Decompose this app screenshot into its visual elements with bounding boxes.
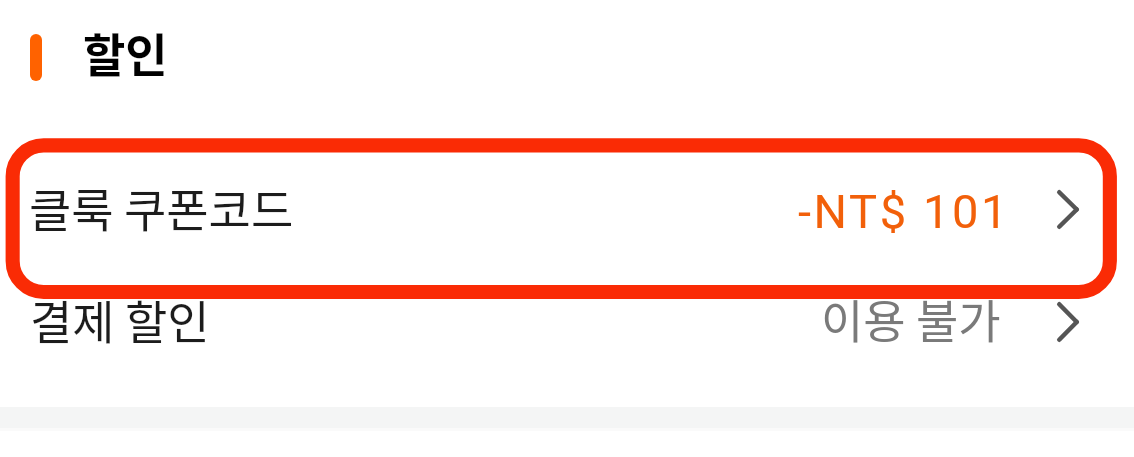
staticText: 결제 할인 xyxy=(30,286,210,353)
button[interactable]: 결제 할인 xyxy=(0,290,1134,390)
staticText: -NT$ 101 xyxy=(798,184,1011,239)
staticText: 클룩 쿠폰코드 xyxy=(29,174,294,241)
other: Open payment discount xyxy=(1057,302,1079,342)
staticText: 할인 xyxy=(83,19,168,86)
staticText: 이용 불가 xyxy=(821,285,1001,352)
other: Open coupon code xyxy=(1057,190,1079,229)
button[interactable]: 클룩 쿠폰코드 xyxy=(0,145,1134,290)
